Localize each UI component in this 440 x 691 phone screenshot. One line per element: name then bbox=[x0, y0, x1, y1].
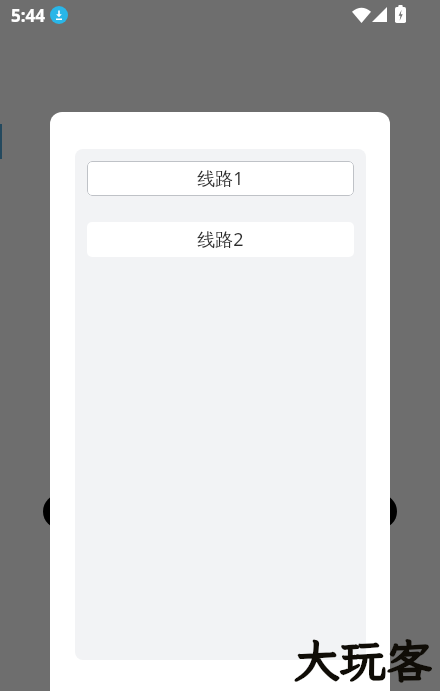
staticText: 大玩客 bbox=[294, 630, 432, 691]
other: Wi-Fi bbox=[352, 7, 371, 23]
staticText: 线路2 bbox=[197, 227, 244, 252]
staticText: 线路1 bbox=[197, 166, 244, 191]
button[interactable]: 线路2 bbox=[87, 222, 354, 257]
other: Mobile signal bbox=[372, 7, 387, 22]
staticText: 大玩客 bbox=[294, 630, 432, 691]
button[interactable]: 线路1 bbox=[87, 161, 354, 196]
other: Battery charging bbox=[395, 5, 406, 23]
other: Download in progress bbox=[50, 6, 68, 24]
staticText: 5:44 bbox=[11, 4, 45, 27]
